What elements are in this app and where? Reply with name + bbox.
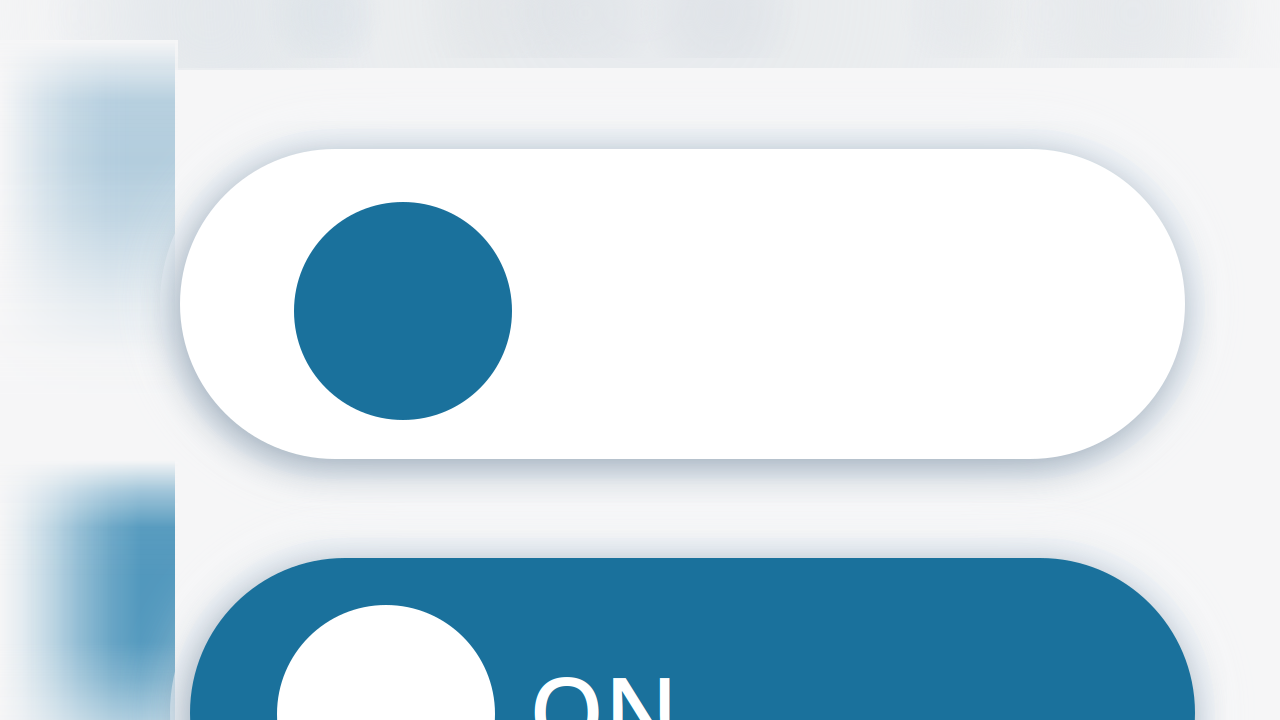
button[interactable]: Switch, on bbox=[190, 558, 1195, 720]
staticText: ON bbox=[529, 646, 678, 720]
button[interactable]: Switch, off bbox=[180, 149, 1185, 459]
